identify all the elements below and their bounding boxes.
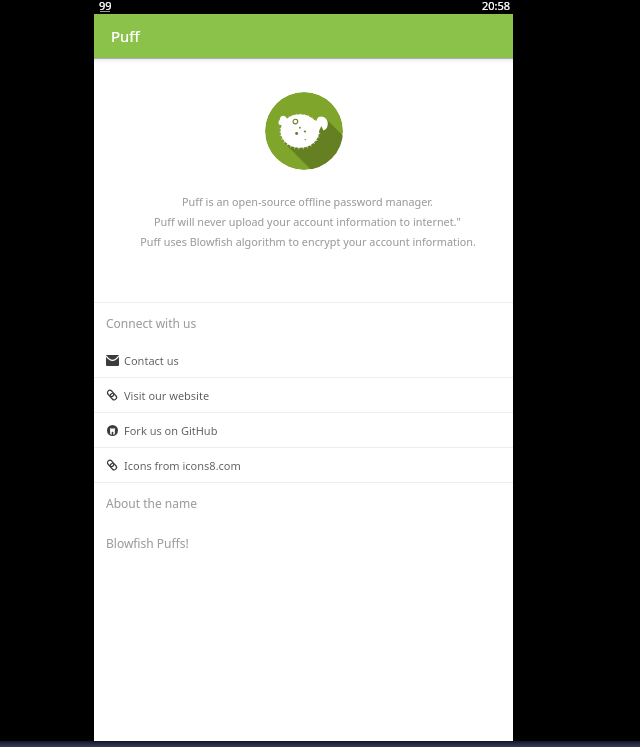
staticText: About the name (106, 495, 197, 511)
staticText: Blowfish Puffs! (106, 535, 189, 551)
staticText: Puff will never upload your account info… (154, 214, 461, 229)
staticText: Puff uses Blowfish algorithm to encrypt … (140, 234, 476, 249)
staticText: Connect with us (106, 315, 197, 331)
staticText: Fork us on GitHub (124, 423, 218, 438)
staticText: Puff (111, 26, 140, 46)
button[interactable]: Fork us on GitHub (94, 413, 513, 447)
staticText: Puff is an open-source offline password … (182, 194, 433, 209)
staticText: 99 (99, 0, 112, 12)
staticText: 20:58 (482, 0, 511, 12)
button[interactable]: Icons from icons8.com (94, 448, 513, 482)
button[interactable]: Contact us (94, 343, 513, 377)
staticText: Icons from icons8.com (124, 458, 241, 473)
staticText: Contact us (124, 353, 179, 368)
button[interactable]: Visit our website (94, 378, 513, 412)
staticText: Visit our website (124, 388, 210, 403)
